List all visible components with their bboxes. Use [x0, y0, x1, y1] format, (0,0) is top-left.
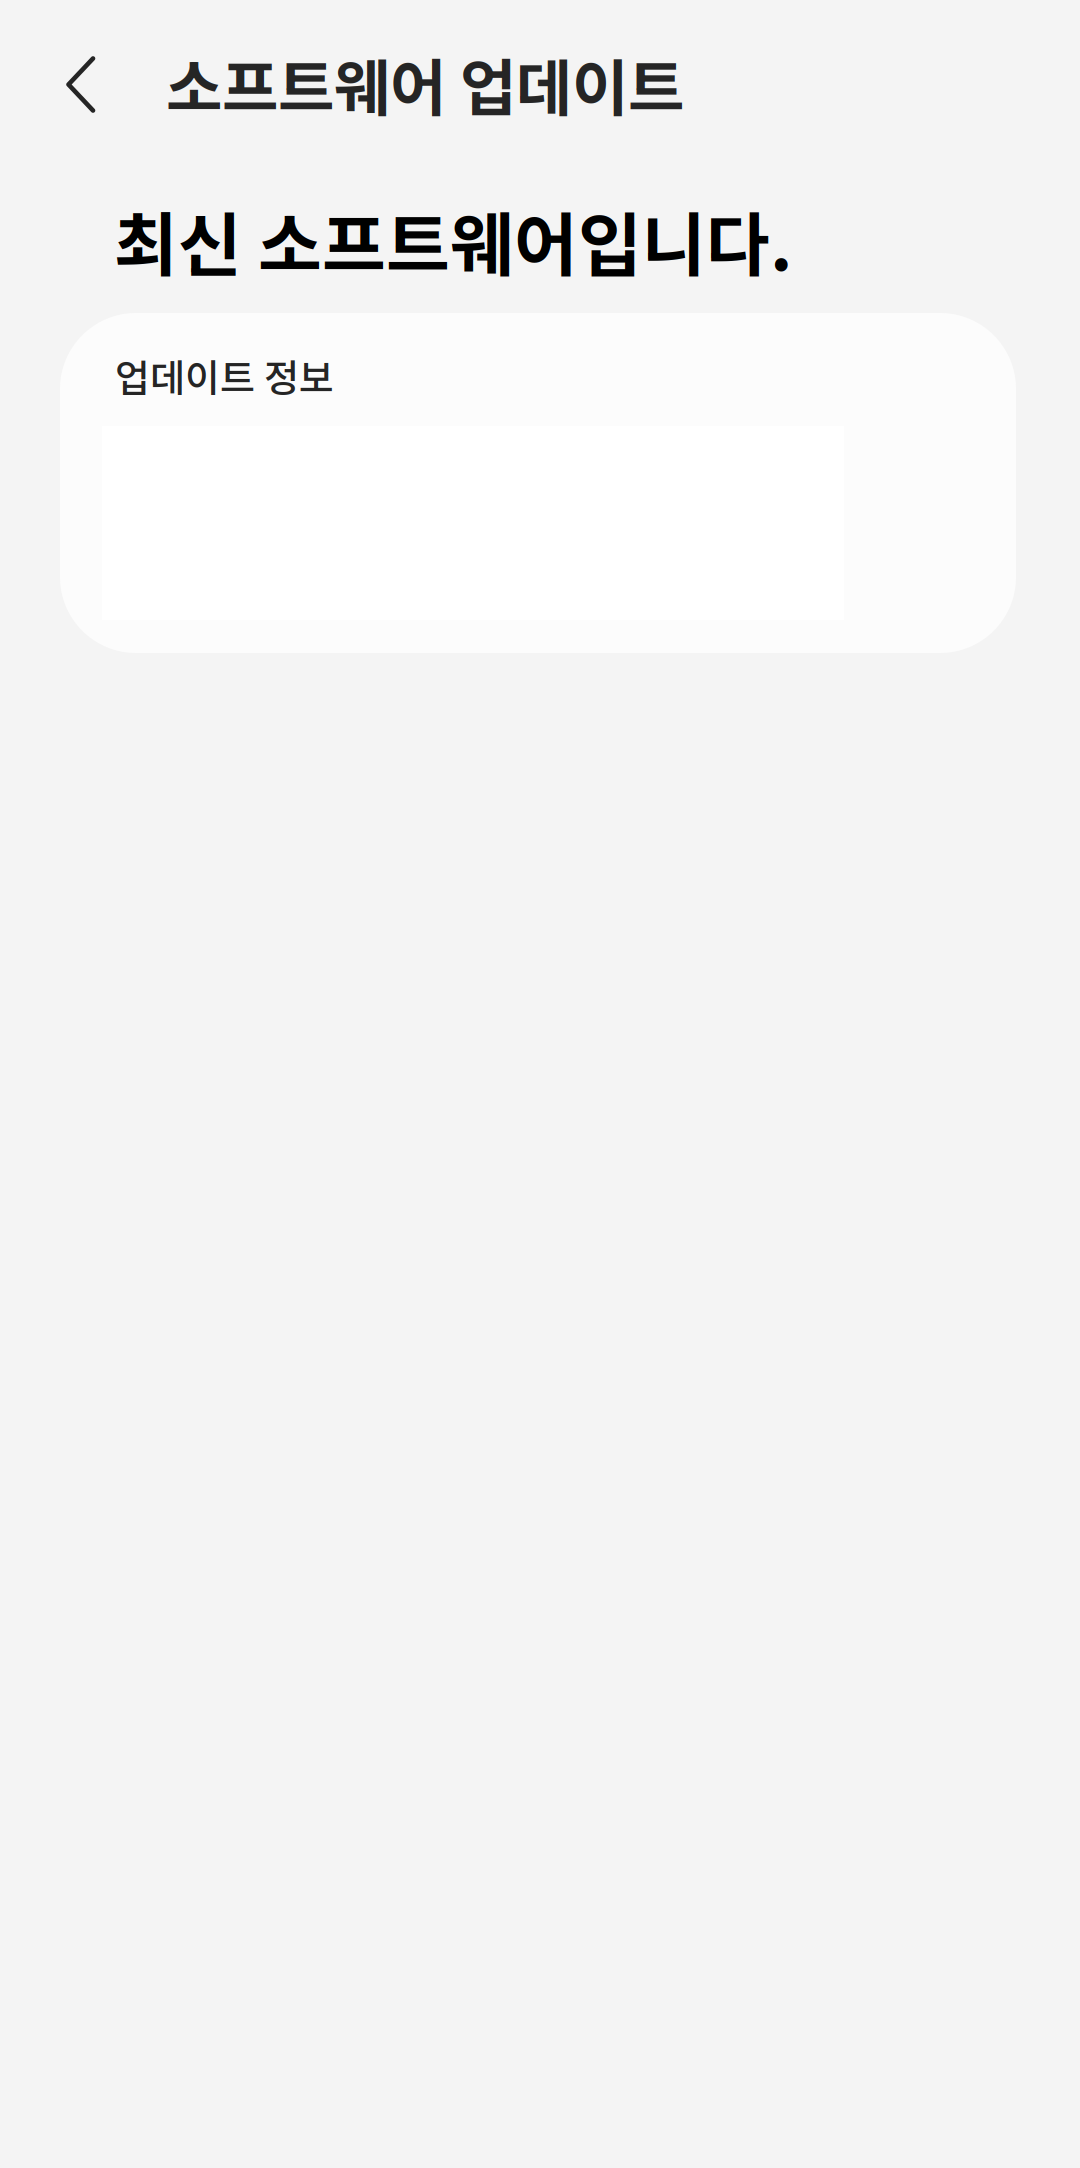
button[interactable]: Back	[26, 30, 136, 140]
staticText: 최신 소프트웨어입니다.	[114, 190, 793, 290]
staticText: 업데이트 정보	[115, 348, 334, 403]
staticText: 소프트웨어 업데이트	[166, 39, 684, 128]
